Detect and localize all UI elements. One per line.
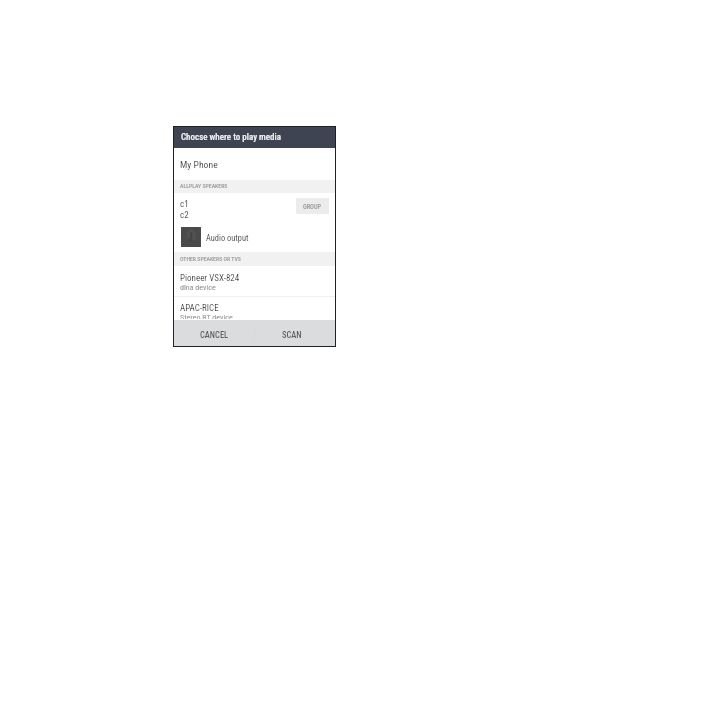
button[interactable]: My Phone bbox=[174, 148, 335, 180]
button[interactable]: APAC-RICE bbox=[174, 297, 335, 320]
button[interactable]: SCAN bbox=[255, 320, 335, 346]
staticText: GROUP bbox=[303, 203, 322, 210]
staticText: Chocse where to play media bbox=[181, 132, 281, 143]
staticText: ALLPLAY SPEAKERS bbox=[180, 183, 228, 190]
staticText: SCAN bbox=[282, 330, 302, 340]
button[interactable]: CANCEL bbox=[174, 320, 254, 346]
staticText: Stereo BT device bbox=[180, 313, 233, 319]
button[interactable]: GROUP bbox=[296, 198, 329, 214]
staticText: OTHER SPEAKERS OR TVS bbox=[180, 256, 241, 263]
staticText: c2 bbox=[180, 210, 189, 221]
button[interactable]: Pioneer VSX-824 bbox=[174, 266, 335, 296]
button[interactable]: c1 bbox=[174, 193, 335, 226]
staticText: APAC-RICE bbox=[180, 303, 219, 314]
staticText: My Phone bbox=[180, 159, 218, 170]
staticText: c1 bbox=[180, 199, 189, 210]
staticText: Audio output bbox=[206, 233, 249, 243]
other: Audio output device bbox=[181, 227, 201, 247]
staticText: dlna device bbox=[180, 283, 216, 292]
staticText: CANCEL bbox=[200, 330, 229, 340]
staticText: Pioneer VSX-824 bbox=[180, 273, 240, 284]
button[interactable]: Audio output device bbox=[174, 226, 335, 252]
